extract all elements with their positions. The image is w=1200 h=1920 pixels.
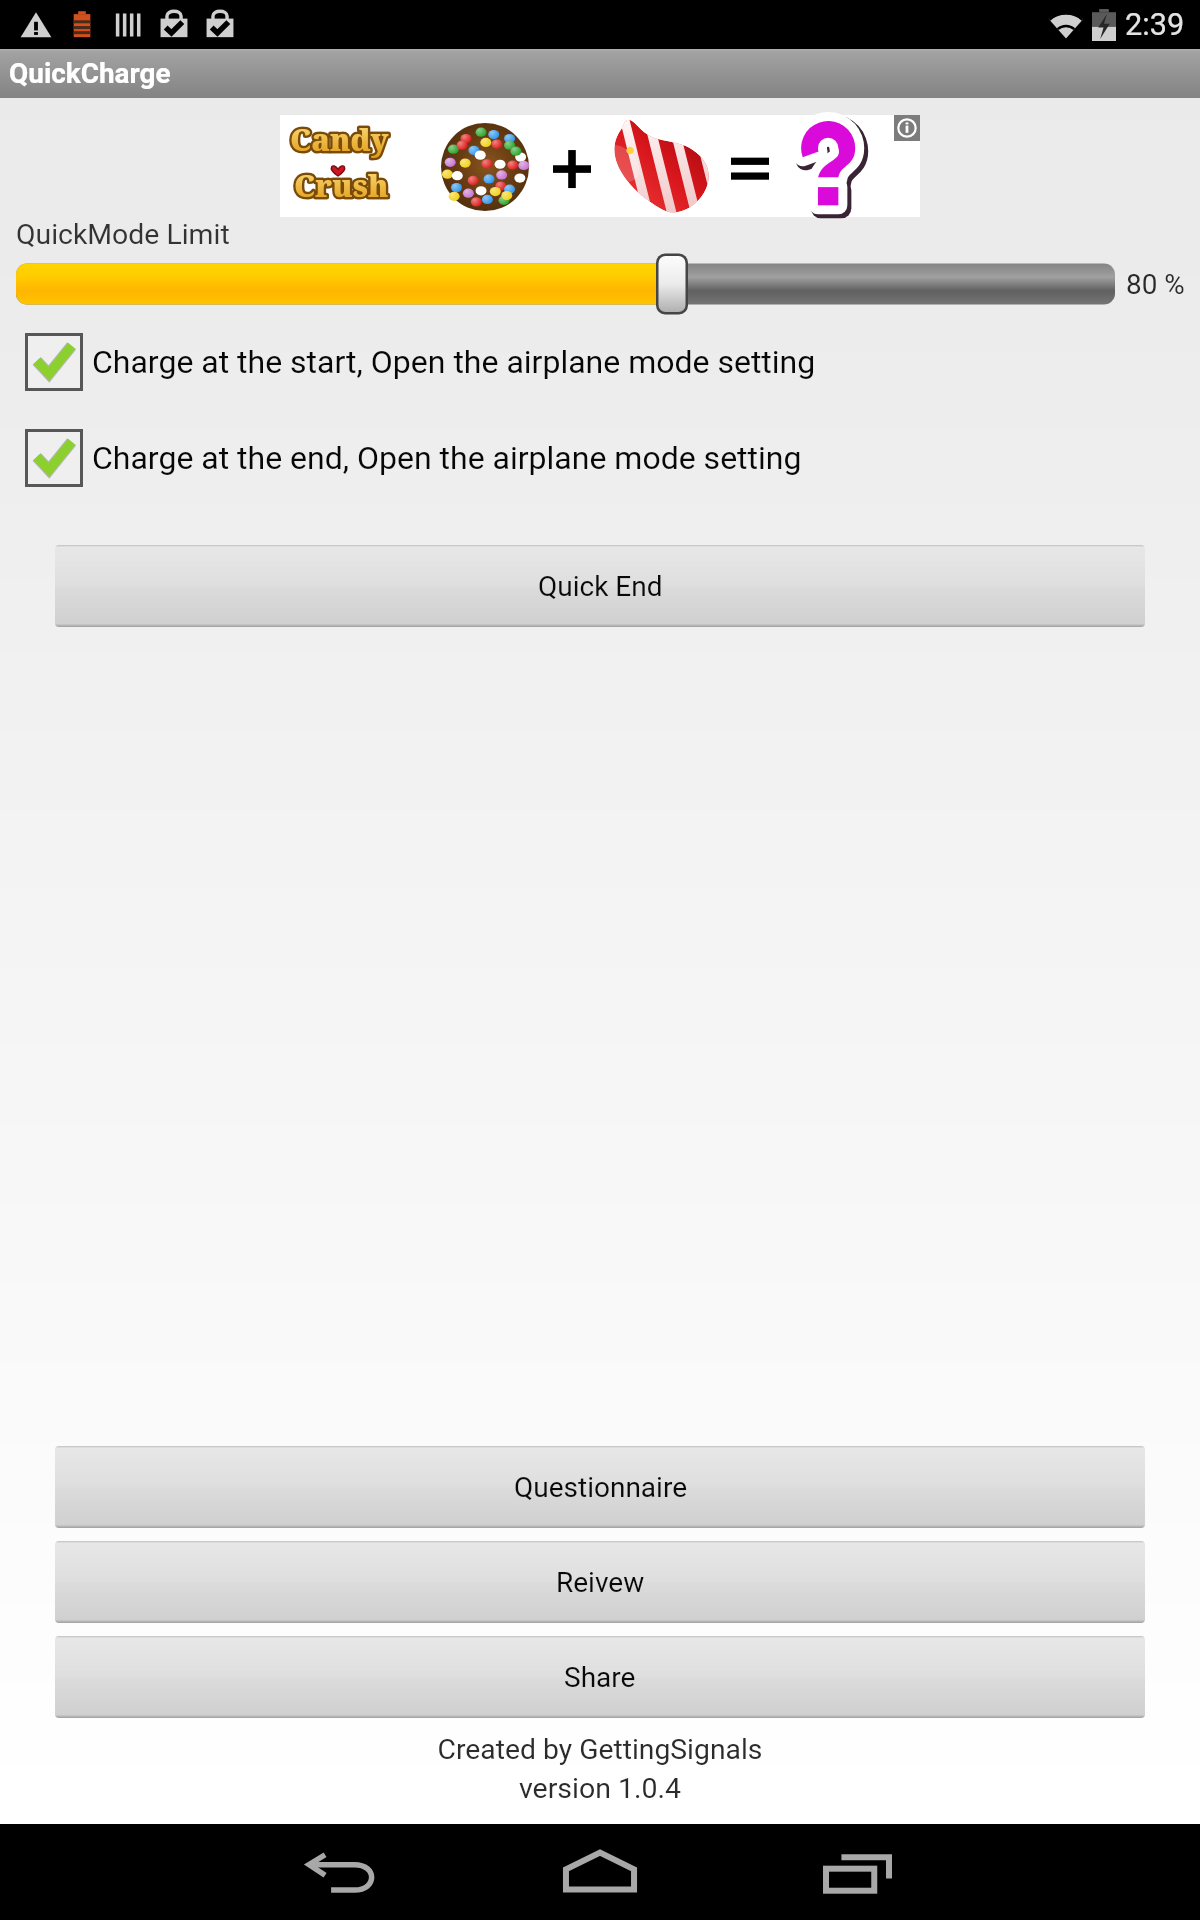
staticText: QuickCharge (9, 57, 171, 90)
button[interactable]: Questionnaire (55, 1446, 1145, 1528)
button[interactable]: Charge at the start, Open the airplane m… (0, 329, 1200, 395)
staticText: Share (564, 1661, 636, 1694)
button[interactable]: Reivew (55, 1541, 1145, 1623)
staticText: Candy (290, 119, 389, 160)
staticText: Candy (290, 119, 389, 160)
button[interactable]: Home (553, 1838, 648, 1902)
staticText: QuickMode Limit (16, 218, 230, 251)
staticText: 2:39 (1125, 7, 1185, 43)
button[interactable]: Charge at the end, Open the airplane mod… (0, 425, 1200, 491)
staticText: Created by GettingSignals (0, 1733, 1200, 1766)
staticText: Crush (294, 165, 389, 206)
staticText: Quick End (538, 570, 663, 603)
staticText: Reivew (556, 1566, 645, 1599)
button[interactable]: Back (295, 1840, 390, 1904)
button[interactable]: Share (55, 1636, 1145, 1718)
staticText: Crush (294, 165, 389, 206)
button[interactable]: Quick End (55, 545, 1145, 627)
staticText: Questionnaire (514, 1471, 687, 1504)
button[interactable]: Advertisement (280, 115, 920, 217)
staticText: version 1.0.4 (0, 1772, 1200, 1805)
button[interactable]: Recent apps (810, 1841, 905, 1905)
staticText: Charge at the end, Open the airplane mod… (92, 439, 802, 477)
staticText: Charge at the start, Open the airplane m… (92, 343, 816, 381)
staticText: 80 % (1126, 268, 1185, 301)
